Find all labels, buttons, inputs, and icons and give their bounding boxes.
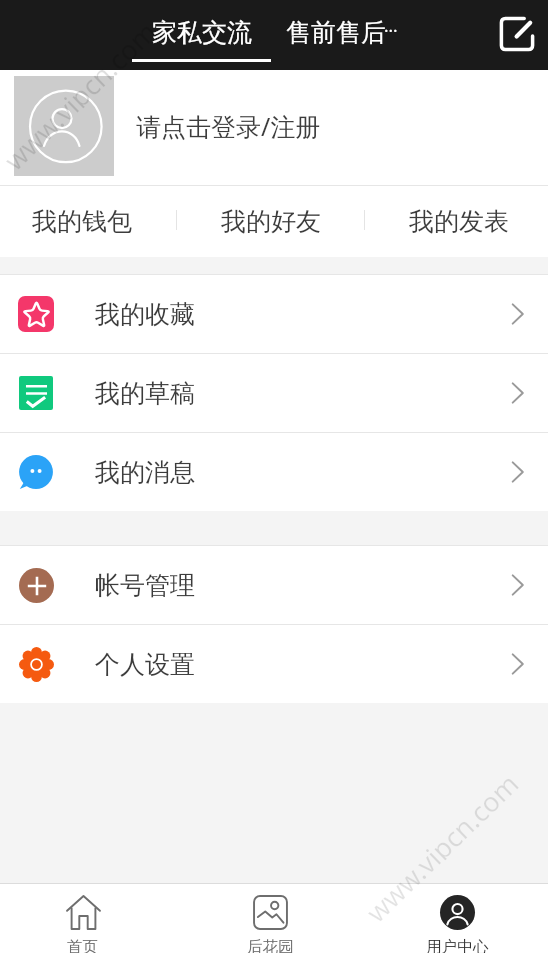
button[interactable]: Compose (493, 10, 540, 57)
button[interactable]: 个人设置 (0, 625, 548, 703)
staticText: 售前售后 (286, 17, 386, 48)
staticText: 我的发表 (409, 206, 509, 237)
button[interactable]: 我的钱包 (0, 186, 172, 257)
button[interactable]: 我的发表 (369, 186, 548, 257)
staticText: 我的草稿 (95, 378, 195, 409)
staticText: 后花园 (247, 937, 294, 953)
button[interactable]: 售前售后 (280, 0, 396, 62)
staticText: 我的好友 (221, 206, 321, 237)
button[interactable]: 请点击登录/注册 (0, 70, 548, 185)
staticText: 请点击登录/注册 (136, 109, 321, 143)
button[interactable]: 我的草稿 (0, 354, 548, 432)
button[interactable]: 我的收藏 (0, 275, 548, 353)
button[interactable]: 用户中心 (397, 895, 517, 953)
staticText: 帐号管理 (95, 570, 195, 601)
button[interactable]: 家私交流 (132, 0, 271, 62)
button[interactable]: 首页 (23, 895, 143, 953)
button[interactable]: 帐号管理 (0, 546, 548, 624)
button[interactable]: 后花园 (210, 895, 330, 953)
staticText: 我的收藏 (95, 299, 195, 330)
staticText: 首页 (67, 937, 99, 953)
staticText: 用户中心 (426, 937, 489, 953)
button[interactable]: 我的消息 (0, 433, 548, 511)
staticText: 我的钱包 (32, 206, 132, 237)
button[interactable]: 我的好友 (181, 186, 361, 257)
staticText: ... (384, 14, 398, 37)
staticText: 我的消息 (95, 457, 195, 488)
staticText: 个人设置 (95, 649, 195, 680)
staticText: www.vipcn.com (357, 765, 521, 925)
staticText: 家私交流 (152, 17, 252, 48)
staticText: www.vipcn.com (0, 13, 159, 173)
